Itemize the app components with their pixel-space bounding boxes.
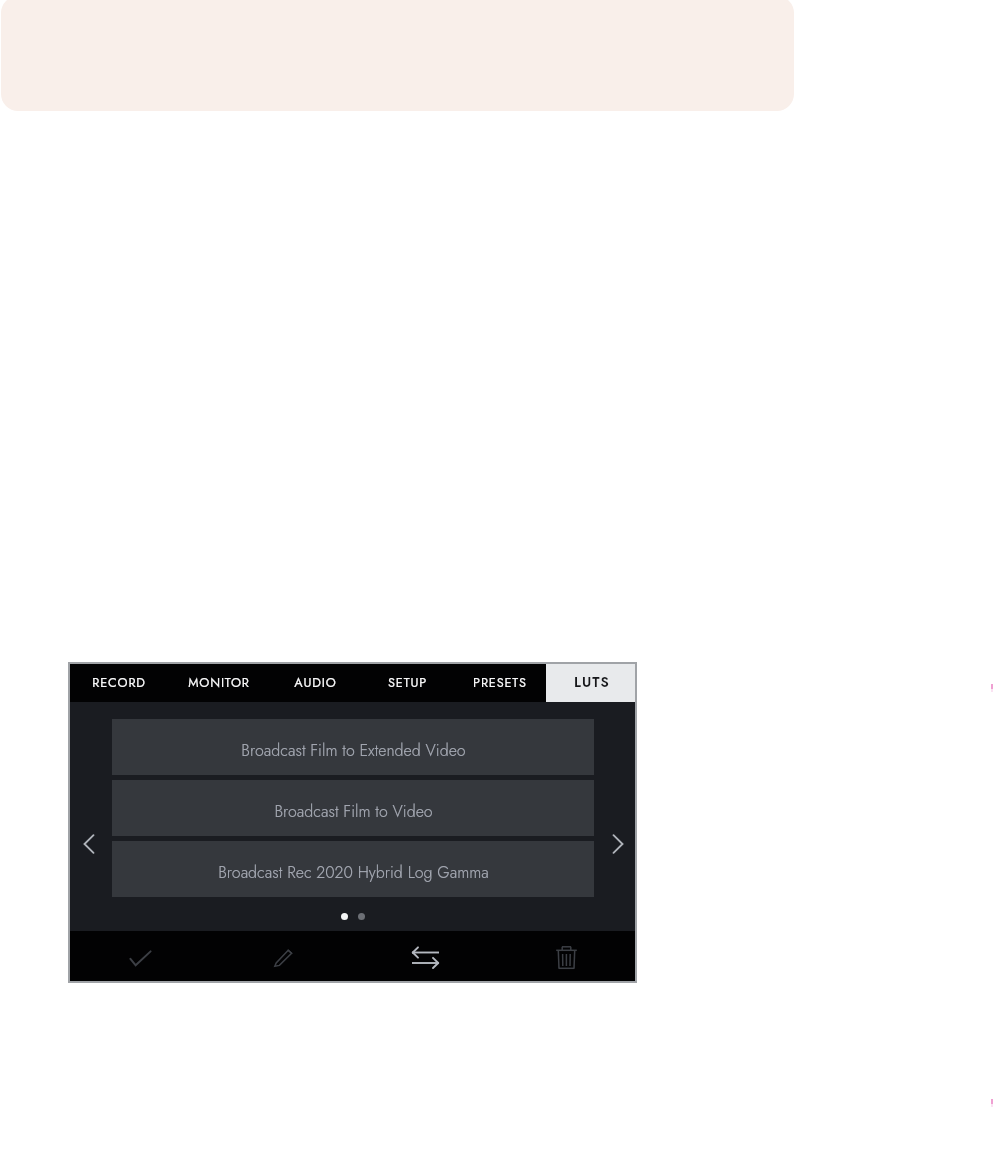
- staticText: Broadcast Film to Extended Video: [241, 739, 466, 762]
- button[interactable]: Previous page: [73, 828, 105, 860]
- staticText: Broadcast Rec 2020 Hybrid Log Gamma: [218, 861, 489, 884]
- staticText: AUDIO: [294, 673, 337, 691]
- button[interactable]: Broadcast Film to Video: [112, 780, 594, 836]
- button[interactable]: AUDIO: [272, 663, 358, 701]
- staticText: LUTS: [574, 672, 610, 692]
- button[interactable]: PRESETS: [457, 663, 543, 701]
- button[interactable]: Edit LUT: [267, 932, 299, 982]
- button[interactable]: Import or export LUT: [409, 932, 441, 982]
- staticText: RECORD: [92, 673, 146, 691]
- button[interactable]: RECORD: [76, 663, 162, 701]
- button[interactable]: MONITOR: [176, 663, 262, 701]
- button[interactable]: SETUP: [364, 663, 450, 701]
- staticText: SETUP: [388, 673, 427, 691]
- button[interactable]: Broadcast Rec 2020 Hybrid Log Gamma: [112, 841, 594, 897]
- button[interactable]: Next page: [602, 828, 634, 860]
- staticText: MONITOR: [188, 673, 250, 691]
- staticText: Broadcast Film to Video: [274, 800, 433, 823]
- button[interactable]: Delete LUT: [550, 932, 582, 982]
- button[interactable]: Apply LUT: [124, 933, 156, 983]
- button[interactable]: Broadcast Film to Extended Video: [112, 719, 594, 775]
- button[interactable]: LUTS: [546, 664, 635, 702]
- staticText: PRESETS: [473, 673, 527, 691]
